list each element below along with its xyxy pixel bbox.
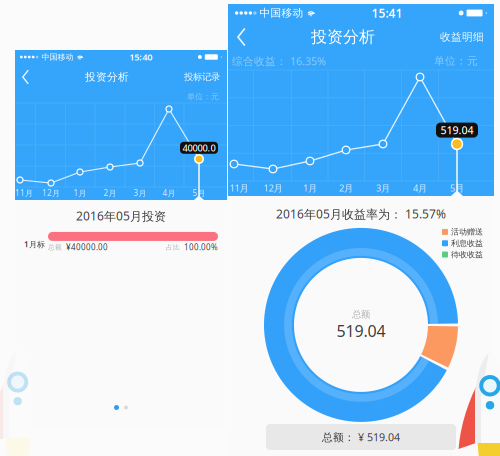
staticText: 单位：元	[187, 92, 219, 101]
staticText: ¥40000.00	[62, 242, 108, 252]
staticText: 投标记录	[184, 71, 220, 83]
button[interactable]: 返回	[15, 64, 37, 90]
staticText: 投资分析	[311, 27, 375, 47]
staticText: 活动赠送	[451, 227, 483, 237]
staticText: 总额： ¥ 519.04	[322, 430, 400, 444]
staticText: 总额	[352, 309, 370, 320]
staticText: 占比	[166, 243, 180, 251]
staticText: 4月	[162, 188, 175, 198]
staticText: 2016年05月投资	[76, 208, 166, 224]
staticText: 2月	[103, 188, 116, 198]
staticText: 单位：元	[434, 54, 478, 67]
staticText: 待收收益	[451, 250, 483, 259]
staticText: 中国移动	[41, 52, 73, 62]
staticText: 1月	[303, 182, 317, 194]
staticText: 519.04	[440, 123, 473, 137]
staticText: 15:40	[129, 51, 152, 63]
staticText: 5月	[192, 188, 205, 198]
staticText: 15:41	[372, 5, 403, 21]
staticText: 11月	[229, 182, 248, 194]
staticText: 1月标	[24, 239, 45, 249]
staticText: 2月	[339, 182, 353, 194]
button[interactable]: 返回	[228, 22, 256, 52]
staticText: 100.00%	[180, 242, 218, 252]
staticText: 中国移动	[260, 6, 304, 19]
staticText: 40000.0	[182, 142, 215, 154]
staticText: 12月	[263, 182, 282, 194]
staticText: 519.04	[336, 320, 385, 341]
staticText: 总额	[48, 243, 62, 251]
staticText: 综合收益： 16.35%	[232, 54, 326, 68]
staticText: 3月	[376, 182, 390, 194]
staticText: 收益明细	[440, 30, 484, 43]
staticText: 投资分析	[85, 70, 129, 83]
staticText: 3月	[133, 188, 146, 198]
staticText: 12月	[42, 188, 60, 198]
button[interactable]: 收益明细	[430, 22, 494, 52]
staticText: 4月	[413, 182, 427, 194]
staticText: 2016年05月收益率为： 15.57%	[276, 206, 446, 222]
staticText: 11月	[15, 188, 33, 198]
staticText: 5月	[450, 182, 464, 194]
staticText: 1月	[73, 188, 86, 198]
staticText: 利息收益	[451, 238, 483, 248]
button[interactable]: 投标记录	[177, 64, 227, 90]
